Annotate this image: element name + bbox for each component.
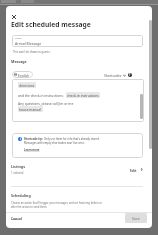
button[interactable]: Cancel	[11, 216, 22, 220]
staticText: English	[18, 73, 30, 77]
button[interactable]: Name	[12, 35, 143, 47]
staticText: Edit scheduled message	[11, 20, 91, 29]
staticText: and the check-in instructions:	[18, 93, 64, 97]
staticText: Listings	[11, 164, 25, 169]
button[interactable]: directions	[12, 79, 144, 122]
staticText: Shortcode tip:	[24, 137, 43, 141]
staticText: Save	[132, 216, 140, 220]
staticText: after the action to send them.	[11, 205, 48, 209]
button[interactable]: Save	[125, 213, 147, 223]
staticText: i	[20, 137, 21, 141]
button[interactable]: Listings	[11, 164, 143, 175]
staticText: Name	[15, 37, 22, 40]
staticText: Choose an action that'll trigger your me…	[11, 201, 102, 205]
staticText: This won't be shown to guests.	[13, 50, 51, 54]
staticText: check-in instructions	[67, 93, 99, 97]
staticText: house manual	[19, 107, 42, 111]
staticText: Only use them for info that's already st…	[44, 137, 100, 141]
staticText: Edit	[130, 168, 137, 172]
button[interactable]: Help	[128, 73, 132, 77]
staticText: Messages with empty shortcodes won't be …	[24, 141, 85, 145]
staticText: Message	[11, 59, 27, 64]
staticText: directions	[19, 83, 35, 87]
staticText: Shortcodes	[104, 73, 122, 77]
button[interactable]: English	[12, 71, 33, 78]
button[interactable]: Close	[9, 12, 18, 21]
staticText: Arrival Message	[15, 41, 42, 46]
staticText: Any questions, please call Jim or me	[18, 101, 74, 105]
staticText: ?	[129, 73, 131, 77]
button[interactable]: Learn more	[24, 148, 40, 152]
staticText: 1 selected	[11, 171, 24, 175]
staticText: Scheduling	[11, 193, 31, 198]
button[interactable]: Shortcodes	[104, 73, 126, 77]
